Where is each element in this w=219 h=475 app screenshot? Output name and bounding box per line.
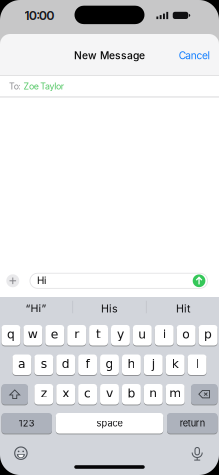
button[interactable]: x — [56, 384, 75, 404]
button[interactable]: h — [122, 354, 141, 375]
staticText: k — [172, 357, 179, 371]
staticText: f — [86, 357, 90, 371]
button[interactable]: s — [34, 354, 53, 375]
staticText: q — [7, 327, 15, 341]
button[interactable]: 123 — [1, 413, 52, 433]
button[interactable]: a — [12, 354, 31, 375]
button[interactable]: Dictate — [192, 447, 202, 461]
button[interactable]: d — [56, 354, 75, 375]
staticText: x — [62, 386, 69, 400]
button[interactable]: b — [122, 384, 141, 404]
staticText: To: — [9, 81, 21, 91]
button[interactable]: Cancel — [179, 48, 219, 61]
staticText: o — [182, 327, 190, 341]
staticText: u — [138, 327, 146, 341]
button[interactable]: f — [78, 354, 97, 375]
staticText: e — [51, 327, 59, 341]
staticText: space — [96, 418, 122, 429]
staticText: b — [127, 386, 135, 400]
button[interactable]: space — [56, 413, 163, 433]
button[interactable]: v — [100, 384, 119, 404]
button[interactable]: e — [45, 325, 64, 345]
button[interactable]: r — [67, 325, 86, 345]
button[interactable]: p — [199, 325, 217, 345]
staticText: 10:00 — [24, 8, 54, 23]
staticText: “Hi” — [25, 302, 46, 315]
staticText: n — [149, 386, 157, 400]
button[interactable]: Emoji — [14, 446, 28, 460]
staticText: s — [41, 357, 47, 371]
staticText: Hi — [37, 275, 46, 287]
button[interactable]: His — [73, 294, 146, 322]
staticText: w — [28, 327, 38, 341]
button[interactable]: Send — [193, 274, 205, 287]
staticText: c — [84, 386, 91, 400]
staticText: Hit — [176, 302, 190, 315]
staticText: His — [101, 302, 118, 315]
staticText: Cancel — [179, 49, 209, 62]
staticText: 123 — [19, 418, 35, 429]
button[interactable]: t — [89, 325, 108, 345]
staticText: h — [127, 357, 135, 371]
button[interactable]: g — [100, 354, 119, 375]
staticText: New Message — [74, 49, 145, 62]
staticText: g — [105, 357, 113, 371]
button[interactable]: z — [34, 384, 53, 404]
button[interactable]: Delete — [191, 384, 217, 404]
button[interactable]: o — [177, 325, 196, 345]
button[interactable]: c — [78, 384, 97, 404]
button[interactable]: “Hi” — [0, 294, 72, 322]
button[interactable]: l — [188, 354, 207, 375]
staticText: m — [169, 386, 181, 400]
button[interactable]: u — [133, 325, 152, 345]
button[interactable]: Hit — [147, 294, 219, 322]
staticText: r — [74, 327, 79, 341]
button[interactable]: Add attachment — [6, 274, 19, 287]
button[interactable]: w — [23, 325, 42, 345]
staticText: p — [204, 327, 212, 341]
staticText: Zoe Taylor — [23, 81, 64, 91]
button[interactable]: y — [111, 325, 130, 345]
staticText: i — [163, 327, 166, 341]
button[interactable]: return — [167, 413, 217, 433]
button[interactable]: i — [155, 325, 174, 345]
staticText: v — [106, 386, 113, 400]
button[interactable]: To: — [0, 76, 219, 97]
staticText: z — [41, 386, 47, 400]
staticText: a — [18, 357, 26, 371]
staticText: t — [96, 327, 101, 341]
staticText: y — [117, 327, 124, 341]
staticText: l — [196, 357, 199, 371]
button[interactable]: n — [144, 384, 163, 404]
button[interactable]: q — [1, 325, 20, 345]
button[interactable]: m — [166, 384, 185, 404]
staticText: return — [180, 418, 205, 429]
button[interactable]: j — [144, 354, 163, 375]
button[interactable]: Shift — [1, 384, 28, 404]
staticText: j — [152, 357, 155, 371]
staticText: d — [62, 357, 70, 371]
button[interactable]: k — [166, 354, 185, 375]
